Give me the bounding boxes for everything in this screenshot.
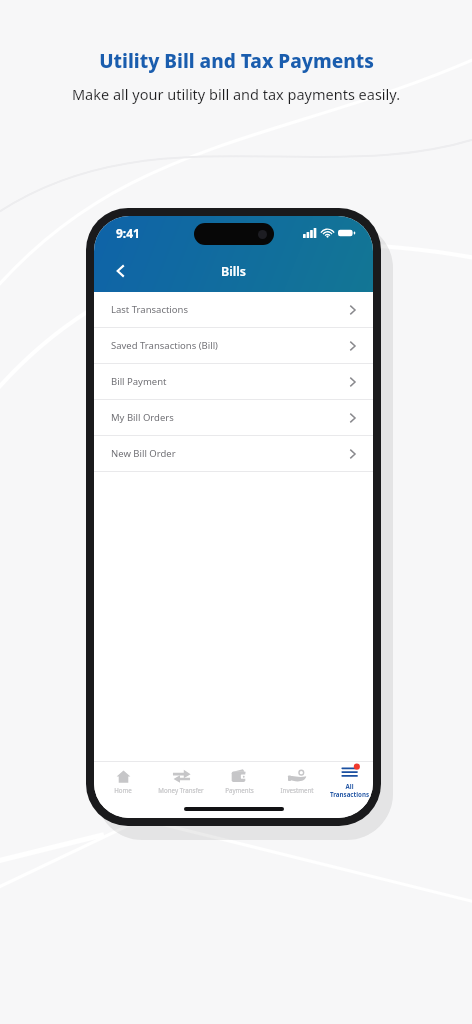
staticText: Bill Payment [111,375,349,388]
button[interactable]: Saved Transactions (Bill) [94,328,373,364]
button[interactable]: All Transactions [326,762,373,800]
staticText: Last Transactions [111,303,349,316]
button[interactable]: Payments [210,766,268,796]
button[interactable]: Last Transactions [94,292,373,328]
staticText: Payments [225,786,254,794]
button[interactable]: Bill Payment [94,364,373,400]
staticText: Investment [280,786,314,794]
button[interactable]: My Bill Orders [94,400,373,436]
button[interactable]: Investment [268,766,326,796]
staticText: Home [114,786,132,794]
staticText: Make all your utility bill and tax payme… [52,84,420,104]
button[interactable]: Money Transfer [152,766,210,796]
button[interactable]: Back [104,254,138,288]
staticText: Saved Transactions (Bill) [111,339,349,352]
staticText: New Bill Order [111,447,349,460]
staticText: Bills [221,263,247,280]
button[interactable]: New Bill Order [94,436,373,472]
staticText: Utility Bill and Tax Payments [99,48,374,74]
button[interactable]: Home [94,766,152,796]
staticText: 9:41 [116,225,140,241]
staticText: All Transactions [326,782,373,798]
staticText: Money Transfer [158,786,204,794]
staticText: My Bill Orders [111,411,349,424]
